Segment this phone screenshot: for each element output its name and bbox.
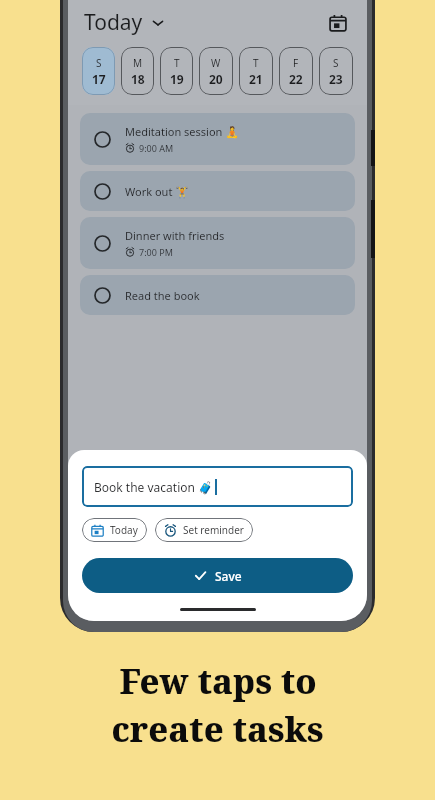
button[interactable]: Open calendar xyxy=(323,8,353,38)
button[interactable]: Dinner with friends xyxy=(80,217,355,269)
staticText: 23 xyxy=(329,71,343,87)
staticText: F xyxy=(293,56,299,70)
staticText: create tasks xyxy=(111,706,324,752)
button[interactable]: Read the book xyxy=(80,275,355,315)
staticText: Save xyxy=(215,568,242,584)
button[interactable]: Today xyxy=(82,518,147,542)
staticText: 17 xyxy=(92,71,106,87)
staticText: S xyxy=(333,56,339,70)
staticText: Book the vacation 🧳 xyxy=(94,479,213,495)
staticText: 18 xyxy=(131,71,145,87)
button[interactable]: S xyxy=(319,47,353,95)
staticText: T xyxy=(253,56,259,70)
button[interactable]: Book the vacation 🧳 xyxy=(82,466,353,507)
staticText: S xyxy=(96,56,102,70)
staticText: 19 xyxy=(170,71,184,87)
button[interactable]: S xyxy=(82,47,115,95)
button[interactable]: M xyxy=(121,47,154,95)
button[interactable]: Work out 🏋 xyxy=(80,171,355,211)
button[interactable]: Set reminder xyxy=(155,518,253,542)
staticText: Today xyxy=(84,8,143,37)
button[interactable]: T xyxy=(160,47,193,95)
staticText: Today xyxy=(110,523,138,537)
button[interactable]: W xyxy=(199,47,233,95)
staticText: Dinner with friends xyxy=(125,228,225,243)
staticText: Few taps to xyxy=(119,658,317,704)
staticText: Read the book xyxy=(125,288,200,303)
staticText: 22 xyxy=(289,71,303,87)
staticText: Meditation session 🧘 xyxy=(125,124,239,139)
button[interactable]: T xyxy=(239,47,273,95)
staticText: 7:00 PM xyxy=(139,246,173,258)
staticText: Set reminder xyxy=(183,523,244,537)
button[interactable]: Save xyxy=(82,558,353,593)
button[interactable]: Today xyxy=(82,6,166,39)
staticText: 20 xyxy=(209,71,223,87)
staticText: W xyxy=(211,56,221,70)
staticText: 21 xyxy=(249,71,263,87)
staticText: Work out 🏋 xyxy=(125,184,189,199)
button[interactable]: F xyxy=(279,47,313,95)
staticText: M xyxy=(133,56,143,70)
staticText: 9:00 AM xyxy=(139,142,174,154)
button[interactable]: Meditation session 🧘 xyxy=(80,113,355,165)
staticText: T xyxy=(174,56,180,70)
